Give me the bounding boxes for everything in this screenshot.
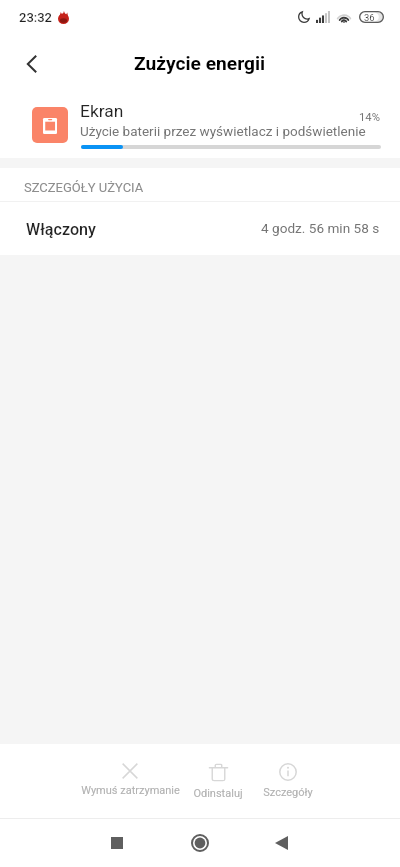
- staticText: Ekran: [80, 101, 124, 121]
- staticText: 36: [364, 12, 375, 23]
- staticText: Odinstaluj: [193, 787, 243, 800]
- staticText: 23:32: [19, 10, 52, 25]
- staticText: 4 godz. 56 min 58 s: [261, 220, 380, 236]
- staticText: Szczegóły: [263, 786, 313, 799]
- button[interactable]: Włączony: [0, 200, 400, 255]
- button[interactable]: Home: [178, 821, 222, 865]
- button[interactable]: Recents: [95, 821, 139, 865]
- button[interactable]: Wymuś zatrzymanie: [66, 763, 194, 797]
- button[interactable]: Back: [259, 821, 303, 865]
- staticText: 14%: [359, 111, 380, 124]
- button[interactable]: Back: [10, 42, 54, 86]
- staticText: Wymuś zatrzymanie: [81, 784, 180, 797]
- staticText: Włączony: [26, 220, 96, 239]
- staticText: Zużycie energii: [134, 52, 266, 75]
- button[interactable]: Odinstaluj: [178, 763, 258, 800]
- staticText: Użycie baterii przez wyświetlacz i podśw…: [80, 123, 366, 139]
- staticText: SZCZEGÓŁY UŻYCIA: [24, 180, 144, 195]
- button[interactable]: Szczegóły: [248, 763, 328, 799]
